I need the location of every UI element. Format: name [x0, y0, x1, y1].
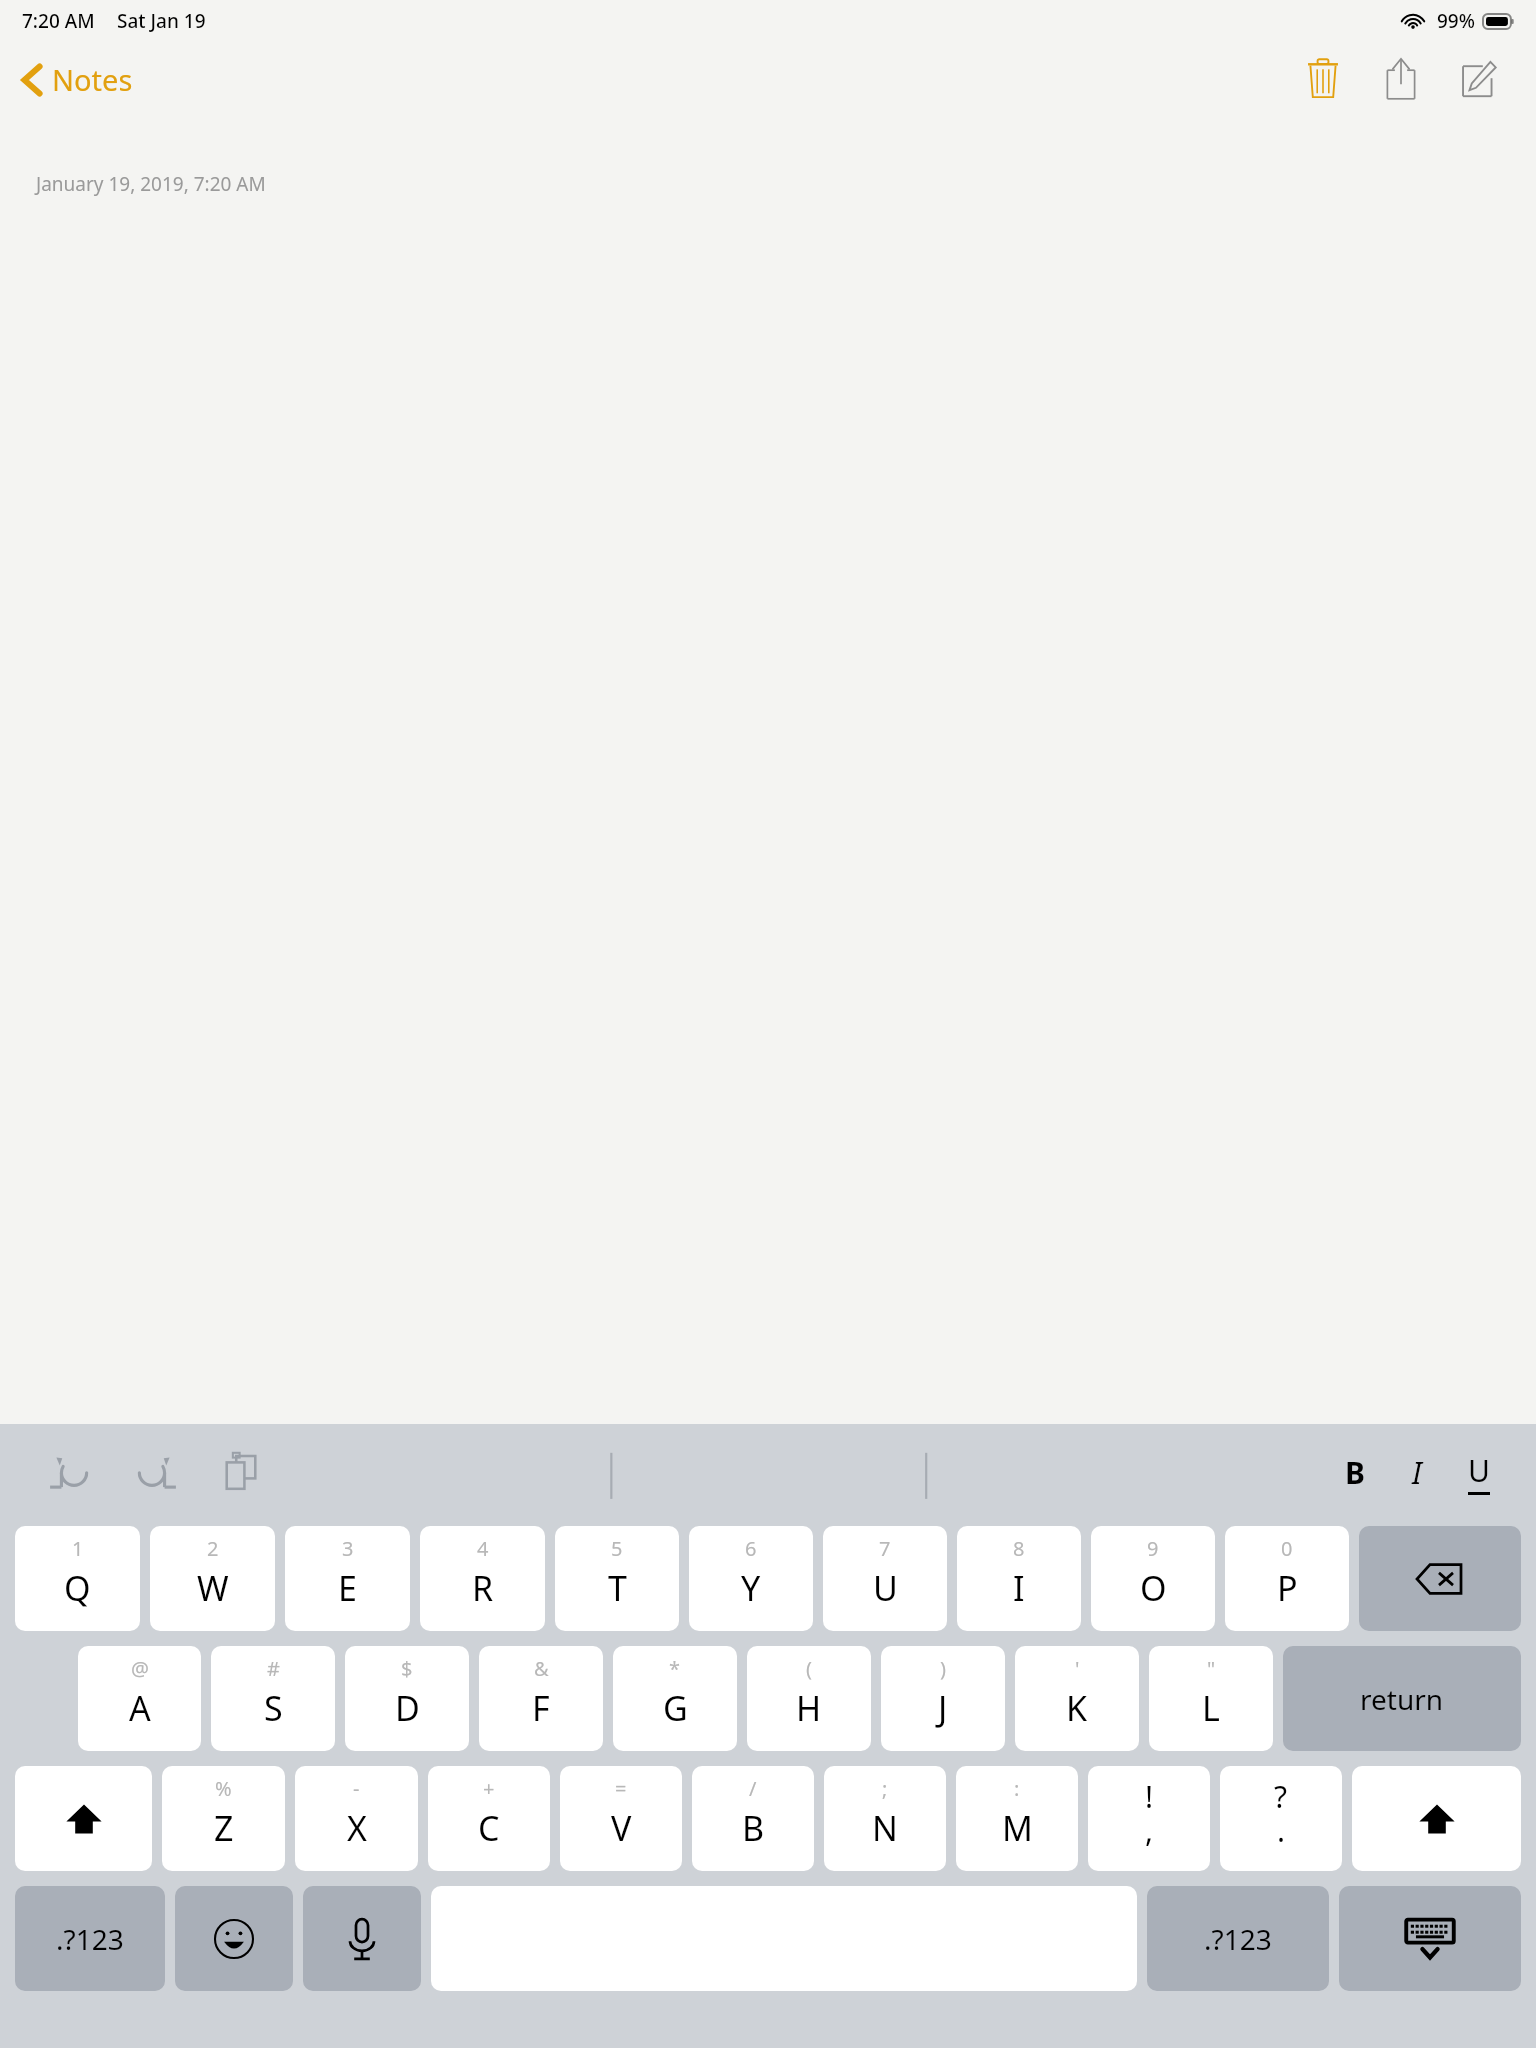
- button[interactable]: 8: [957, 1526, 1081, 1631]
- staticText: ': [1075, 1655, 1080, 1682]
- staticText: #: [267, 1655, 280, 1682]
- button[interactable]: Redo: [124, 1439, 190, 1505]
- staticText: =: [615, 1775, 627, 1802]
- staticText: L: [1202, 1685, 1220, 1731]
- staticText: C: [478, 1805, 500, 1851]
- button[interactable]: Backspace: [1359, 1526, 1521, 1631]
- staticText: Sat Jan 19: [117, 8, 206, 34]
- button[interactable]: (: [747, 1646, 871, 1751]
- staticText: O: [1140, 1565, 1167, 1611]
- button[interactable]: Dictate: [303, 1886, 421, 1991]
- button[interactable]: $: [345, 1646, 469, 1751]
- button[interactable]: ): [881, 1646, 1005, 1751]
- staticText: @: [131, 1655, 149, 1682]
- staticText: U: [1468, 1450, 1490, 1491]
- button[interactable]: 0: [1225, 1526, 1349, 1631]
- staticText: 9: [1147, 1535, 1159, 1562]
- staticText: *: [669, 1655, 681, 1682]
- staticText: W: [197, 1565, 229, 1611]
- staticText: R: [472, 1565, 494, 1611]
- button[interactable]: 6: [689, 1526, 813, 1631]
- button[interactable]: 9: [1091, 1526, 1215, 1631]
- staticText: P: [1277, 1565, 1298, 1611]
- staticText: ?: [1274, 1776, 1288, 1817]
- button[interactable]: B: [1324, 1441, 1386, 1503]
- staticText: (: [806, 1655, 812, 1682]
- staticText: 7:20 AM: [22, 8, 95, 34]
- staticText: M: [1002, 1805, 1033, 1851]
- button[interactable]: :: [956, 1766, 1078, 1871]
- button[interactable]: ": [1149, 1646, 1273, 1751]
- staticText: +: [483, 1775, 495, 1802]
- staticText: /: [749, 1775, 757, 1802]
- button[interactable]: %: [162, 1766, 285, 1871]
- button[interactable]: Hide keyboard: [1339, 1886, 1521, 1991]
- staticText: ;: [882, 1775, 888, 1802]
- button[interactable]: Share: [1362, 49, 1440, 109]
- staticText: .?123: [56, 1920, 124, 1958]
- button[interactable]: &: [479, 1646, 603, 1751]
- button[interactable]: Undo: [36, 1439, 102, 1505]
- button[interactable]: .?123: [1147, 1886, 1329, 1991]
- staticText: 6: [745, 1535, 757, 1562]
- staticText: 8: [1013, 1535, 1025, 1562]
- staticText: &: [534, 1655, 549, 1682]
- button[interactable]: Emoji: [175, 1886, 293, 1991]
- staticText: B: [742, 1805, 765, 1851]
- staticText: Y: [741, 1565, 761, 1611]
- button[interactable]: 7: [823, 1526, 947, 1631]
- staticText: ): [940, 1655, 946, 1682]
- button[interactable]: @: [78, 1646, 201, 1751]
- button[interactable]: +: [428, 1766, 550, 1871]
- button[interactable]: 1: [15, 1526, 140, 1631]
- staticText: 7: [879, 1535, 891, 1562]
- button[interactable]: 5: [555, 1526, 679, 1631]
- staticText: 5: [611, 1535, 623, 1562]
- button[interactable]: =: [560, 1766, 682, 1871]
- button[interactable]: 3: [285, 1526, 410, 1631]
- staticText: Q: [64, 1565, 91, 1611]
- staticText: G: [663, 1685, 688, 1731]
- staticText: ,: [1145, 1810, 1154, 1851]
- staticText: V: [611, 1805, 632, 1851]
- button[interactable]: Shift: [15, 1766, 152, 1871]
- button[interactable]: .?123: [15, 1886, 165, 1991]
- button[interactable]: return: [1283, 1646, 1521, 1751]
- button[interactable]: 4: [420, 1526, 545, 1631]
- button[interactable]: U: [1448, 1441, 1510, 1503]
- staticText: H: [796, 1685, 822, 1731]
- button[interactable]: ;: [824, 1766, 946, 1871]
- button[interactable]: *: [613, 1646, 737, 1751]
- staticText: return: [1360, 1680, 1444, 1718]
- staticText: !: [1145, 1776, 1154, 1817]
- button[interactable]: 2: [150, 1526, 275, 1631]
- button[interactable]: Notes: [0, 54, 147, 105]
- button[interactable]: Compose: [1440, 49, 1518, 109]
- staticText: X: [347, 1805, 367, 1851]
- button[interactable]: Shift: [1352, 1766, 1521, 1871]
- staticText: January 19, 2019, 7:20 AM: [36, 171, 266, 197]
- staticText: %: [215, 1775, 232, 1802]
- button[interactable]: Paste: [208, 1439, 274, 1505]
- button[interactable]: /: [692, 1766, 814, 1871]
- button[interactable]: ?: [1220, 1766, 1342, 1871]
- staticText: .: [1277, 1810, 1286, 1851]
- staticText: .?123: [1204, 1920, 1272, 1958]
- button[interactable]: -: [295, 1766, 418, 1871]
- staticText: K: [1066, 1685, 1088, 1731]
- button[interactable]: Delete: [1284, 49, 1362, 109]
- button[interactable]: I: [1386, 1441, 1448, 1503]
- staticText: Z: [214, 1805, 234, 1851]
- staticText: 4: [477, 1535, 489, 1562]
- staticText: :: [1014, 1775, 1020, 1802]
- staticText: B: [1345, 1452, 1365, 1493]
- button[interactable]: ': [1015, 1646, 1139, 1751]
- staticText: S: [264, 1685, 283, 1731]
- staticText: D: [395, 1685, 420, 1731]
- staticText: T: [608, 1565, 627, 1611]
- button[interactable]: #: [211, 1646, 335, 1751]
- staticText: 1: [72, 1535, 84, 1562]
- button[interactable]: !: [1088, 1766, 1210, 1871]
- staticText: A: [129, 1685, 151, 1731]
